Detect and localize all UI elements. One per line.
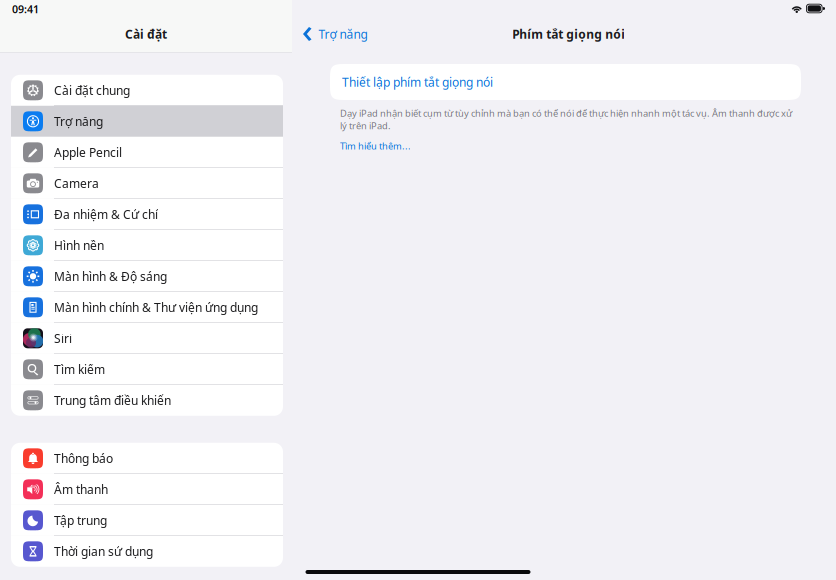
button[interactable]: Màn hình chính & Thư viện ứng dụng (11, 292, 283, 323)
staticText: Âm thanh (54, 481, 108, 497)
button[interactable]: Thời gian sử dụng (11, 536, 283, 567)
staticText: Đa nhiệm & Cử chỉ (54, 206, 158, 222)
staticText: Hình nền (54, 237, 104, 253)
staticText: Thông báo (54, 450, 113, 466)
button[interactable]: Màn hình & Độ sáng (11, 261, 283, 292)
staticText: Thiết lập phím tắt giọng nói (342, 74, 493, 90)
button[interactable]: Tìm hiểu thêm... (340, 140, 411, 152)
button[interactable]: Trung tâm điều khiển (11, 385, 283, 416)
staticText: 09:41 (12, 2, 39, 16)
button[interactable]: Thiết lập phím tắt giọng nói (330, 64, 801, 100)
button[interactable]: Cài đặt chung (11, 75, 283, 106)
staticText: Tìm kiếm (54, 361, 105, 377)
button[interactable]: Đa nhiệm & Cử chỉ (11, 199, 283, 230)
button[interactable]: Apple Pencil (11, 137, 283, 168)
staticText: Dạy iPad nhận biết cụm từ tùy chỉnh mà b… (340, 107, 792, 132)
staticText: Màn hình chính & Thư viện ứng dụng (54, 299, 258, 315)
button[interactable]: Trợ năng (292, 20, 375, 48)
button[interactable]: Thông báo (11, 443, 283, 474)
staticText: Trợ năng (318, 26, 367, 42)
staticText: Cài đặt chung (54, 82, 130, 98)
button[interactable]: Tìm kiếm (11, 354, 283, 385)
button[interactable]: Hình nền (11, 230, 283, 261)
button[interactable]: Trợ năng (11, 106, 283, 137)
staticText: Tập trung (54, 512, 107, 528)
staticText: Tìm hiểu thêm... (340, 140, 411, 152)
staticText: Camera (54, 175, 99, 191)
button[interactable]: Âm thanh (11, 474, 283, 505)
staticText: Apple Pencil (54, 144, 122, 160)
staticText: Màn hình & Độ sáng (54, 268, 167, 284)
staticText: Siri (54, 330, 72, 346)
button[interactable]: Siri (11, 323, 283, 354)
staticText: Trợ năng (54, 113, 103, 129)
staticText: Thời gian sử dụng (54, 543, 153, 559)
button[interactable]: Tập trung (11, 505, 283, 536)
staticText: Phím tắt giọng nói (512, 26, 625, 42)
staticText: Cài đặt (125, 26, 167, 42)
staticText: Trung tâm điều khiển (54, 392, 171, 408)
button[interactable]: Camera (11, 168, 283, 199)
